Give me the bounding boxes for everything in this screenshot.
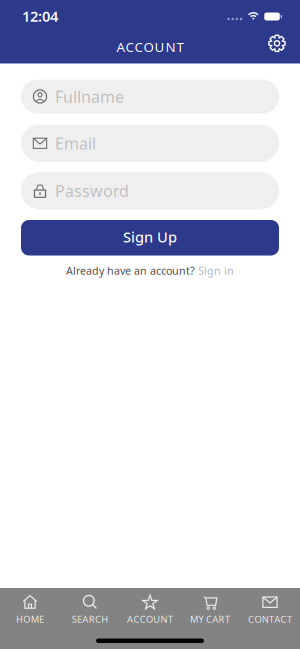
staticText: CONTACT (248, 613, 292, 625)
staticText: MY CART (190, 613, 230, 625)
staticText: Password (55, 180, 129, 201)
staticText: Email (55, 133, 96, 154)
staticText: Sign Up (123, 227, 177, 246)
staticText: SEARCH (72, 613, 108, 625)
staticText: Fullname (55, 86, 124, 107)
button[interactable]: CONTACT (240, 594, 300, 625)
button[interactable]: MY CART (180, 594, 240, 625)
staticText: HOME (16, 613, 44, 625)
button[interactable]: Sign in (198, 263, 234, 278)
staticText: 12:04 (22, 6, 58, 26)
staticText: ACCOUNT (116, 38, 183, 56)
button[interactable]: SEARCH (60, 594, 120, 625)
staticText: ACCOUNT (127, 613, 173, 625)
button[interactable]: ACCOUNT (120, 594, 180, 625)
staticText: Already have an account? (66, 263, 198, 278)
button[interactable]: HOME (0, 594, 60, 625)
button[interactable]: Sign Up (21, 220, 279, 255)
staticText: Sign in (198, 263, 234, 278)
button[interactable]: Settings (268, 34, 286, 52)
